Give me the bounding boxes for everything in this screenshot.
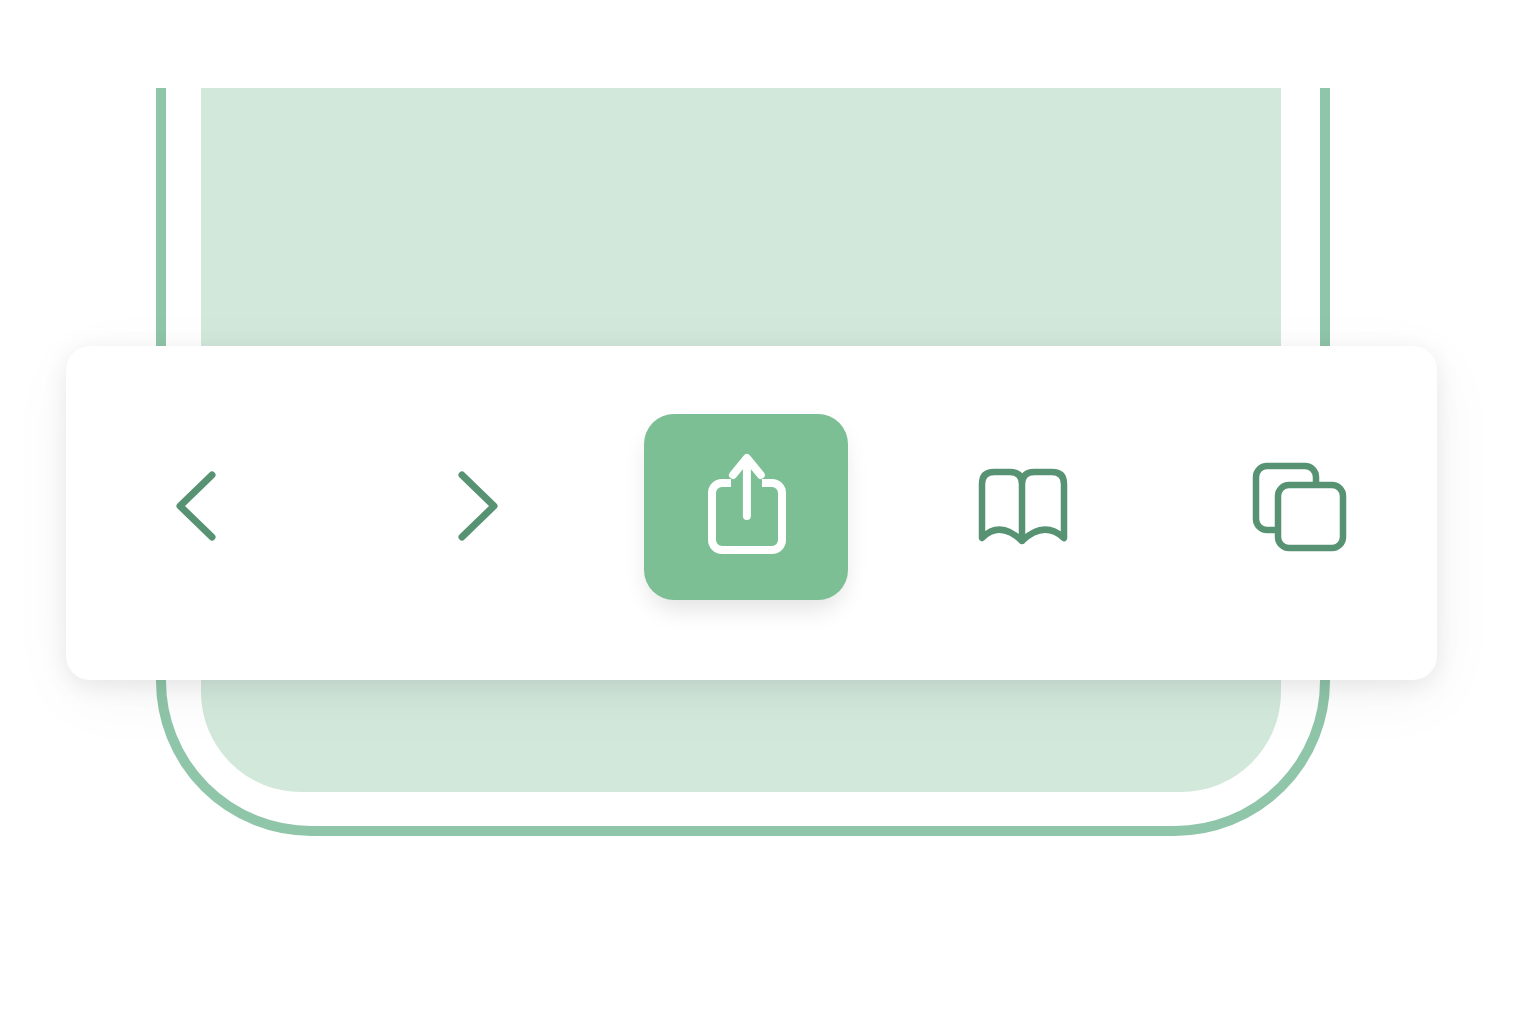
button[interactable]	[438, 450, 518, 562]
button[interactable]	[156, 450, 236, 562]
button[interactable]	[975, 464, 1071, 548]
button[interactable]	[644, 414, 848, 600]
button[interactable]	[1248, 458, 1352, 558]
